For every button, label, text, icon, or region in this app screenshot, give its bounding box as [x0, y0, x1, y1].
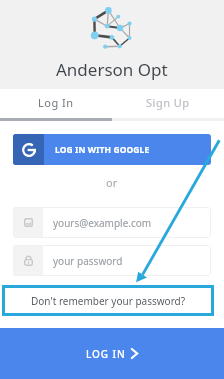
button[interactable]: Don't remember your password? [2, 285, 214, 316]
staticText: LOG IN [86, 347, 126, 361]
other: Google [22, 143, 36, 157]
staticText: LOG IN WITH GOOGLE [55, 144, 150, 156]
button[interactable]: Email [13, 207, 211, 238]
other: Password [24, 255, 33, 266]
staticText: your password [53, 254, 123, 268]
button[interactable]: Google [13, 134, 211, 165]
staticText: Anderson Opt [56, 58, 168, 81]
other: Email [24, 218, 33, 227]
staticText: yours@example.com [53, 216, 152, 230]
button[interactable]: Log In [0, 89, 112, 116]
button[interactable]: LOG IN [0, 328, 224, 379]
staticText: Log In [38, 95, 74, 110]
staticText: Don't remember your password? [31, 294, 186, 308]
staticText: or [106, 175, 118, 190]
button[interactable]: Password [13, 245, 211, 276]
staticText: Sign Up [146, 95, 190, 110]
button[interactable]: Sign Up [112, 89, 224, 116]
